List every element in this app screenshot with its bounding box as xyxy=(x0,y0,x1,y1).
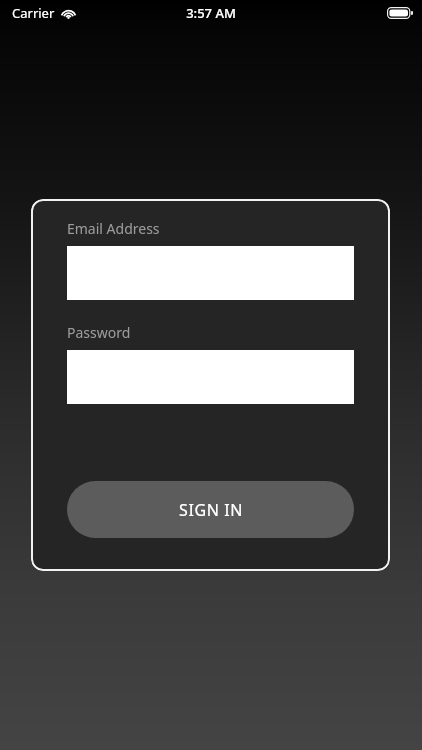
other: Wi-Fi signal xyxy=(61,8,76,19)
staticText: Email Address xyxy=(67,219,160,238)
staticText: 3:57 AM xyxy=(186,4,236,22)
staticText: SIGN IN xyxy=(179,499,243,521)
button[interactable]: SIGN IN xyxy=(67,481,354,538)
other: Battery full xyxy=(387,7,413,19)
staticText: Carrier xyxy=(12,4,55,22)
staticText: Password xyxy=(67,323,131,342)
